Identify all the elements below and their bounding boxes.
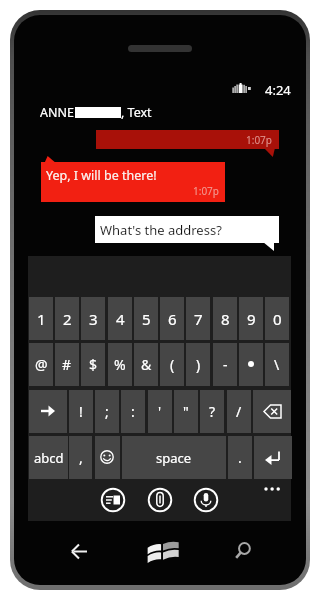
- button[interactable]: ): [186, 343, 210, 386]
- staticText: 9: [247, 309, 256, 329]
- button[interactable]: Yep, I will be there!: [41, 162, 225, 202]
- button[interactable]: 1: [29, 297, 53, 340]
- button[interactable]: @: [29, 343, 53, 386]
- staticText: What's the address?: [100, 221, 222, 239]
- button[interactable]: 7: [186, 297, 210, 340]
- staticText: 3: [89, 309, 98, 329]
- button[interactable]: 4: [108, 297, 132, 340]
- button[interactable]: [254, 436, 292, 479]
- staticText: 8: [221, 309, 230, 329]
- staticText: %: [114, 355, 126, 374]
- button[interactable]: 8: [213, 297, 237, 340]
- staticText: space: [156, 449, 192, 467]
- button[interactable]: 9: [239, 297, 263, 340]
- button[interactable]: .: [228, 436, 252, 479]
- staticText: @: [35, 355, 48, 374]
- button[interactable]: 1:07p: [96, 130, 279, 149]
- button[interactable]: ;: [95, 390, 119, 433]
- staticText: .: [238, 448, 242, 467]
- staticText: ?: [209, 402, 216, 421]
- button[interactable]: -: [213, 343, 237, 386]
- staticText: 6: [168, 309, 177, 329]
- staticText: $: [89, 355, 98, 374]
- button[interactable]: Voice input: [193, 487, 219, 513]
- staticText: 2: [63, 309, 72, 329]
- other: Signal and battery: [232, 83, 252, 93]
- button[interactable]: Attach: [147, 487, 173, 513]
- staticText: 4:24: [265, 81, 291, 99]
- button[interactable]: /: [227, 390, 251, 433]
- button[interactable]: &: [134, 343, 158, 386]
- button[interactable]: space: [122, 436, 226, 479]
- staticText: ): [196, 355, 201, 374]
- button[interactable]: 5: [134, 297, 158, 340]
- button[interactable]: 6: [160, 297, 184, 340]
- button[interactable]: \: [265, 343, 289, 386]
- button[interactable]: 2: [55, 297, 79, 340]
- button[interactable]: Back: [49, 531, 109, 571]
- button[interactable]: ": [174, 390, 198, 433]
- staticText: \: [274, 355, 280, 374]
- staticText: Yep, I will be there!: [46, 167, 157, 184]
- button[interactable]: $: [81, 343, 105, 386]
- button[interactable]: %: [108, 343, 132, 386]
- staticText: /: [236, 402, 242, 421]
- staticText: 1: [37, 309, 46, 329]
- button[interactable]: [253, 390, 291, 433]
- staticText: abcd: [34, 449, 64, 467]
- staticText: ": [183, 402, 189, 421]
- button[interactable]: Handwriting: [100, 487, 126, 513]
- button[interactable]: [95, 436, 120, 479]
- staticText: ;: [105, 402, 109, 421]
- button[interactable]: Search: [213, 531, 273, 571]
- staticText: &: [141, 355, 152, 374]
- staticText: ': [158, 402, 162, 421]
- button[interactable]: [239, 343, 263, 386]
- staticText: -: [223, 355, 228, 374]
- staticText: (: [170, 355, 175, 374]
- staticText: 1:07p: [246, 133, 272, 147]
- staticText: !: [79, 402, 83, 421]
- button[interactable]: [29, 390, 67, 433]
- staticText: ANNE: [40, 104, 74, 121]
- staticText: 7: [194, 309, 203, 329]
- button[interactable]: More options: [264, 483, 280, 495]
- button[interactable]: ,: [69, 436, 92, 479]
- staticText: #: [62, 355, 72, 374]
- staticText: :: [131, 402, 135, 421]
- button[interactable]: 3: [81, 297, 105, 340]
- staticText: 1:07p: [193, 184, 219, 198]
- staticText: 0: [273, 309, 282, 329]
- button[interactable]: abcd: [29, 436, 68, 479]
- staticText: 4: [116, 309, 125, 329]
- button[interactable]: ': [148, 390, 172, 433]
- button[interactable]: ?: [200, 390, 224, 433]
- button[interactable]: :: [121, 390, 145, 433]
- button[interactable]: What's the address?: [95, 216, 279, 243]
- button[interactable]: !: [69, 390, 93, 433]
- staticText: , Text: [121, 104, 152, 121]
- button[interactable]: #: [55, 343, 79, 386]
- button[interactable]: (: [160, 343, 184, 386]
- button[interactable]: Start: [132, 531, 193, 571]
- staticText: ,: [79, 448, 83, 467]
- staticText: 5: [142, 309, 151, 329]
- button[interactable]: 0: [265, 297, 289, 340]
